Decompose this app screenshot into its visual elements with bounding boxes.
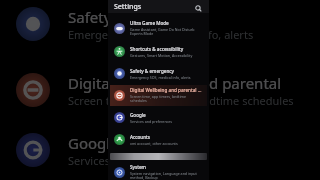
staticText: Services and preferences (130, 119, 173, 124)
staticText: Services and preferences (68, 153, 197, 168)
staticText: System (130, 164, 146, 170)
staticText: Shortcuts & accessibility (130, 46, 184, 52)
other: System (114, 167, 125, 178)
other: Safety & emergency (16, 7, 50, 41)
button[interactable]: Accounts (110, 129, 207, 150)
staticText: Settings (114, 2, 142, 12)
button[interactable]: Search (194, 4, 203, 13)
staticText: Screen time, app timers, bedtime schedul… (68, 93, 294, 108)
other: Google (16, 133, 50, 167)
button[interactable]: Google (110, 107, 207, 128)
button[interactable]: Ultra Game Mode (110, 16, 207, 40)
staticText: Google (130, 112, 146, 118)
other: Digital Wellbeing and parental controls (114, 90, 125, 101)
staticText: Digital Wellbeing and parental controls (68, 73, 320, 93)
other: Accounts (114, 134, 125, 145)
staticText: Safety & emergency (68, 7, 209, 27)
staticText: Accounts (130, 134, 151, 140)
button[interactable]: System (110, 164, 207, 180)
staticText: Digital Wellbeing and parental controls (130, 87, 203, 93)
staticText: Screen time, app timers, bedtime schedul… (130, 94, 203, 104)
button[interactable]: Digital Wellbeing and parental controls (110, 85, 207, 106)
staticText: xmi account, other accounts (130, 141, 178, 146)
staticText: Gestures, Smart Motion, Accessibility (130, 53, 193, 58)
staticText: Safety & emergency (130, 68, 174, 74)
staticText: Ultra Game Mode (130, 20, 169, 26)
other: Ultra Game Mode (114, 23, 125, 34)
staticText: System navigation, Language and input me… (130, 171, 197, 180)
staticText: Game Assistant, Game Do Not Disturb Expe… (130, 27, 195, 37)
other: Shortcuts & accessibility (114, 46, 125, 57)
staticText: Emergency SOS, medical info, alerts (130, 75, 191, 80)
staticText: Emergency SOS, medical info, alerts (68, 27, 254, 42)
button[interactable]: Safety & emergency (110, 63, 207, 84)
other: Digital Wellbeing and parental controls (16, 73, 50, 107)
button[interactable]: Shortcuts & accessibility (110, 41, 207, 62)
other: Safety & emergency (114, 68, 125, 79)
staticText: Google (68, 133, 119, 153)
other: Google (114, 112, 125, 123)
